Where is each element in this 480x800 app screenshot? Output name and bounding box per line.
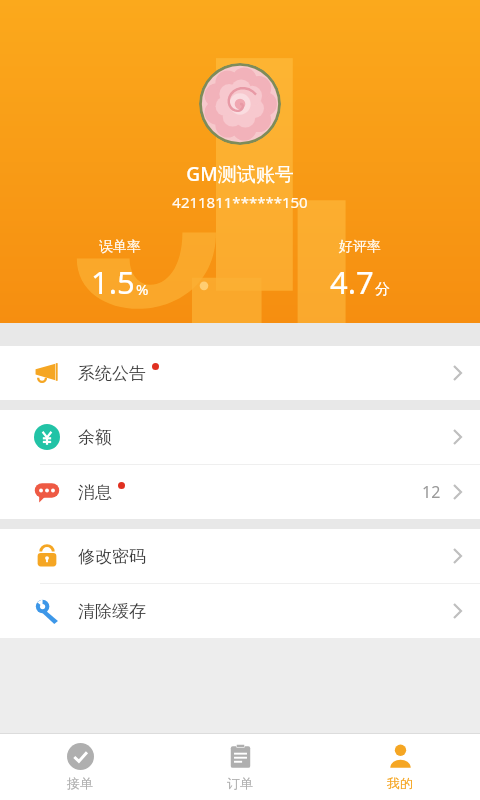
- button[interactable]: 修改密码: [0, 529, 480, 583]
- button[interactable]: 订单: [160, 734, 320, 800]
- staticText: 好评率: [339, 238, 381, 256]
- button[interactable]: 接单: [0, 734, 160, 800]
- button[interactable]: 我的: [320, 734, 480, 800]
- staticText: 分: [375, 280, 390, 299]
- staticText: 接单: [67, 775, 93, 791]
- staticText: 清除缓存: [78, 601, 146, 622]
- button[interactable]: 消息: [0, 465, 480, 519]
- staticText: 12: [422, 481, 441, 503]
- staticText: 订单: [227, 775, 253, 791]
- staticText: 1.5: [91, 261, 135, 303]
- staticText: GM测试账号: [186, 161, 294, 187]
- button[interactable]: 清除缓存: [0, 584, 480, 638]
- staticText: 系统公告: [78, 363, 146, 384]
- staticText: 误单率: [99, 238, 141, 256]
- staticText: 我的: [387, 775, 413, 791]
- staticText: 4211811******150: [172, 192, 308, 212]
- staticText: 修改密码: [78, 546, 146, 567]
- staticText: 4.7: [330, 261, 374, 303]
- button[interactable]: 系统公告: [0, 346, 480, 400]
- button[interactable]: 余额: [0, 410, 480, 464]
- staticText: 消息: [78, 482, 112, 503]
- staticText: 余额: [78, 427, 112, 448]
- staticText: %: [136, 279, 149, 299]
